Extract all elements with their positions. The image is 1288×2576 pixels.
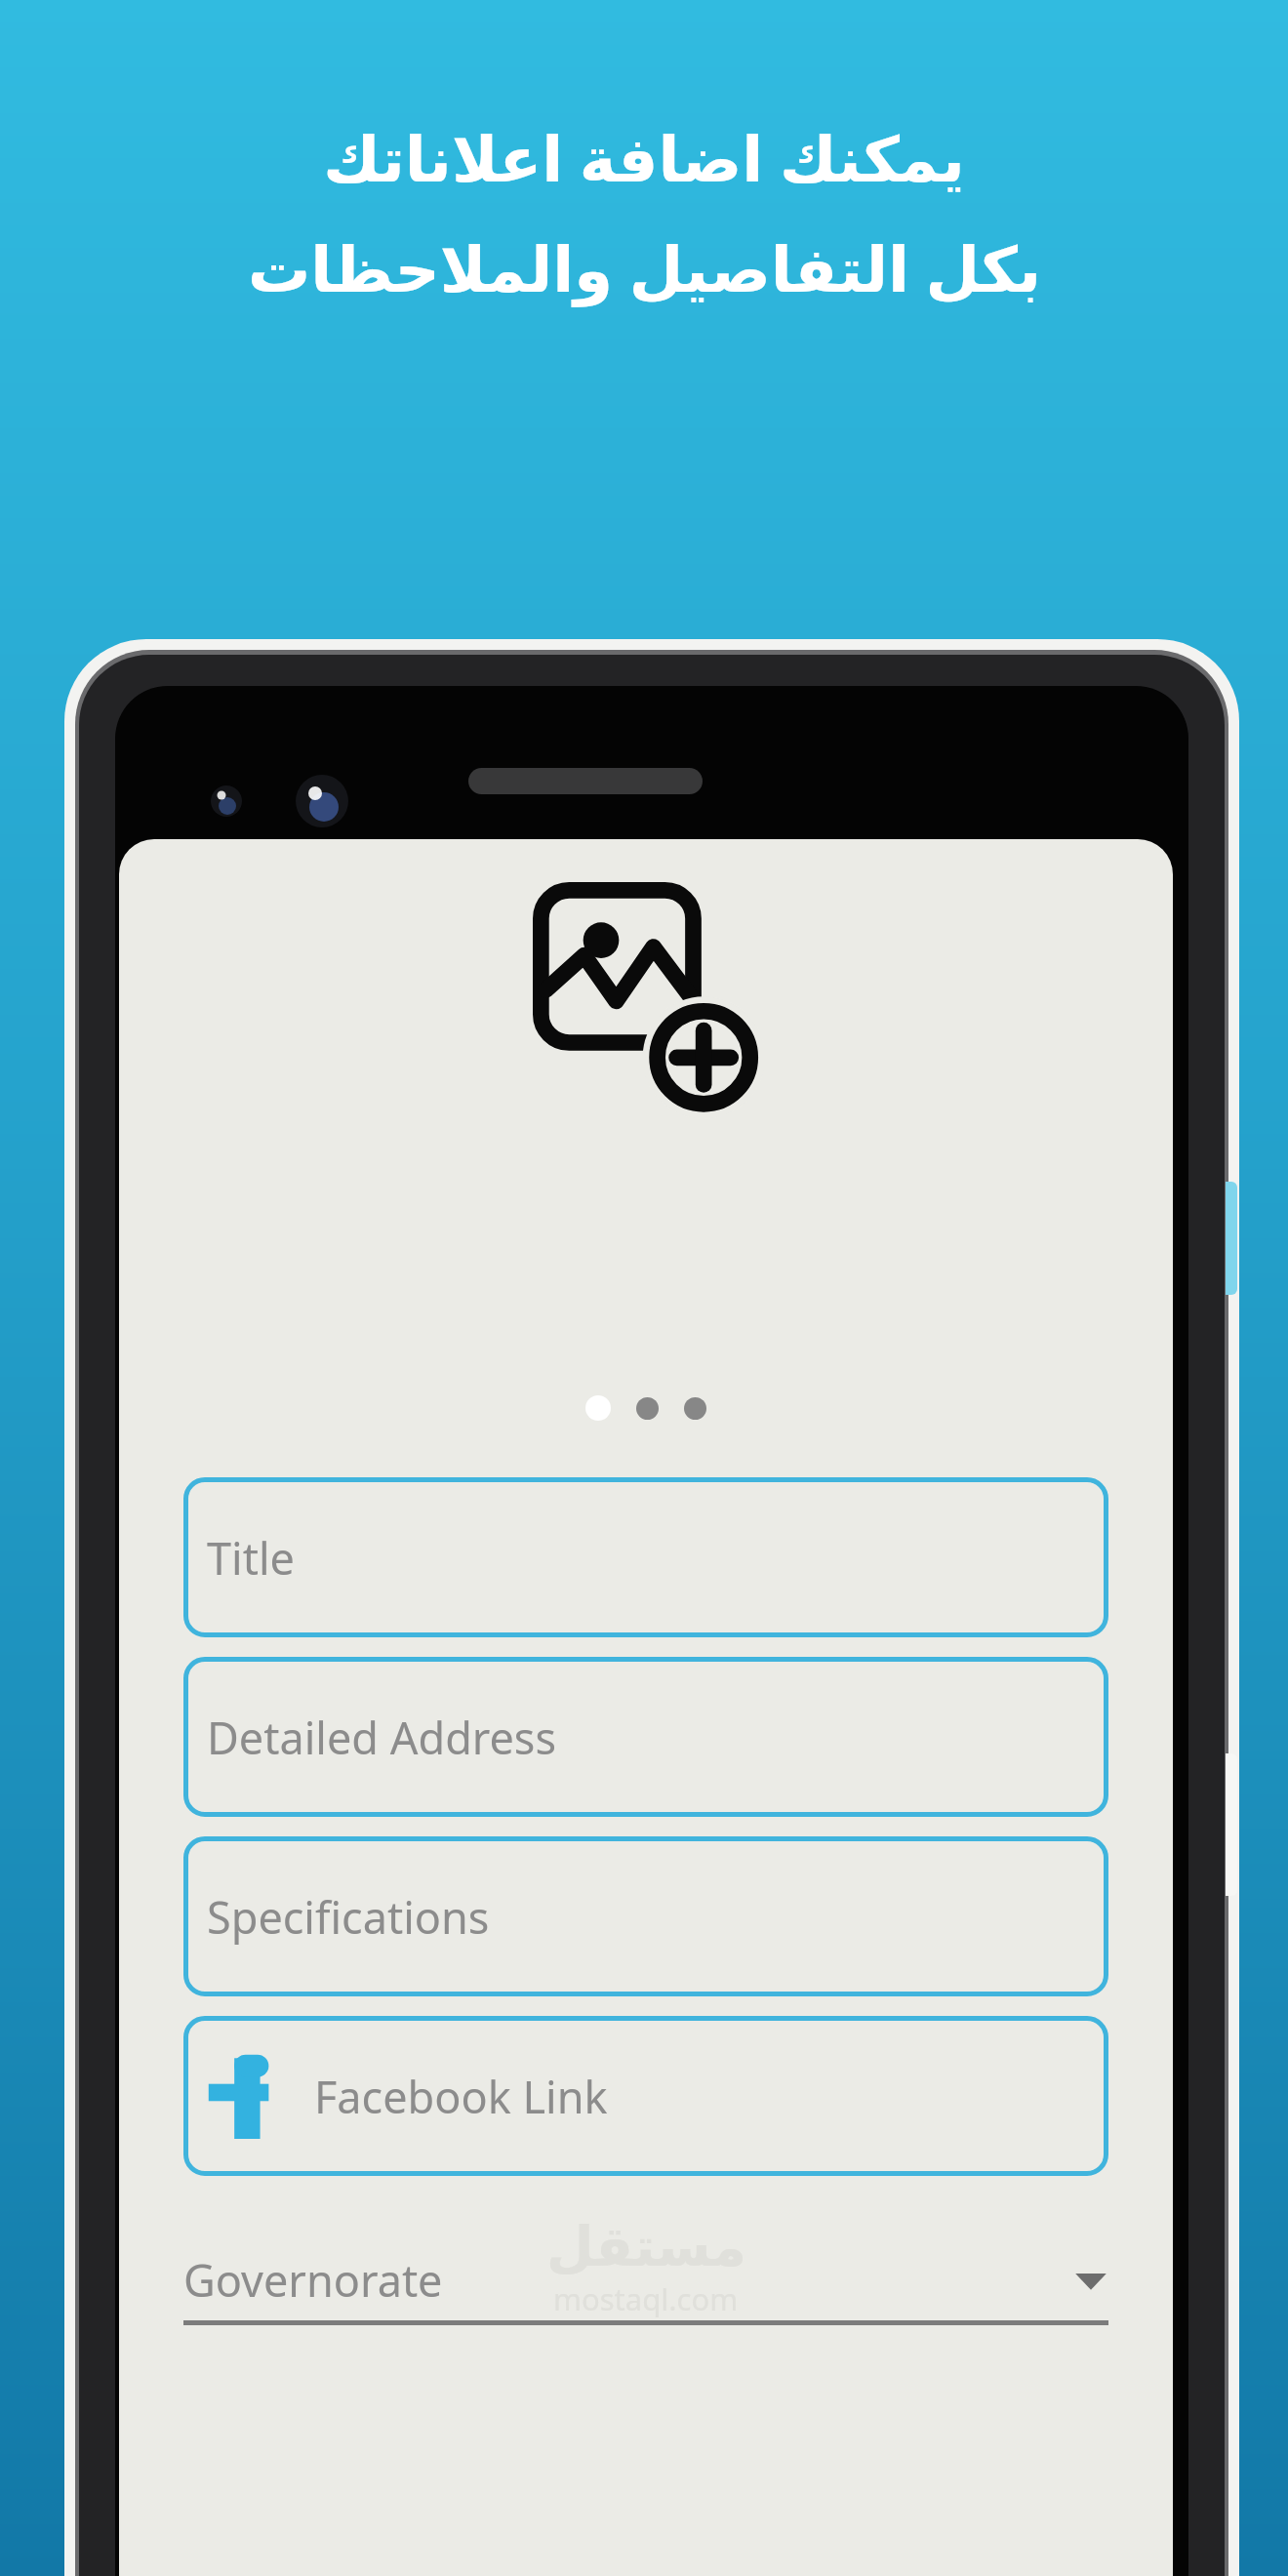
button[interactable]: Add image [119,839,1173,1395]
staticText: مستقل [546,2215,746,2278]
staticText: يمكنك اضافة اعلاناتك [323,115,965,200]
button[interactable]: Title [183,1477,1108,1637]
staticText: Detailed Address [207,1708,556,1767]
staticText: Specifications [207,1887,490,1947]
staticText: mostaql.com [553,2278,739,2319]
button[interactable]: Specifications [183,1836,1108,1996]
other: Add image [533,882,759,1108]
button[interactable]: Facebook Link [183,2016,1108,2176]
staticText: Facebook Link [314,2067,608,2126]
button[interactable]: Detailed Address [183,1657,1108,1817]
button[interactable]: Volume buttons [1226,1753,1237,1896]
staticText: Governorate [183,2250,443,2310]
staticText: Title [207,1528,295,1588]
button[interactable]: Governorate [183,2238,1108,2325]
staticText: بكل التفاصيل والملاحظات [248,225,1041,310]
button[interactable]: Power button [1226,1182,1237,1295]
